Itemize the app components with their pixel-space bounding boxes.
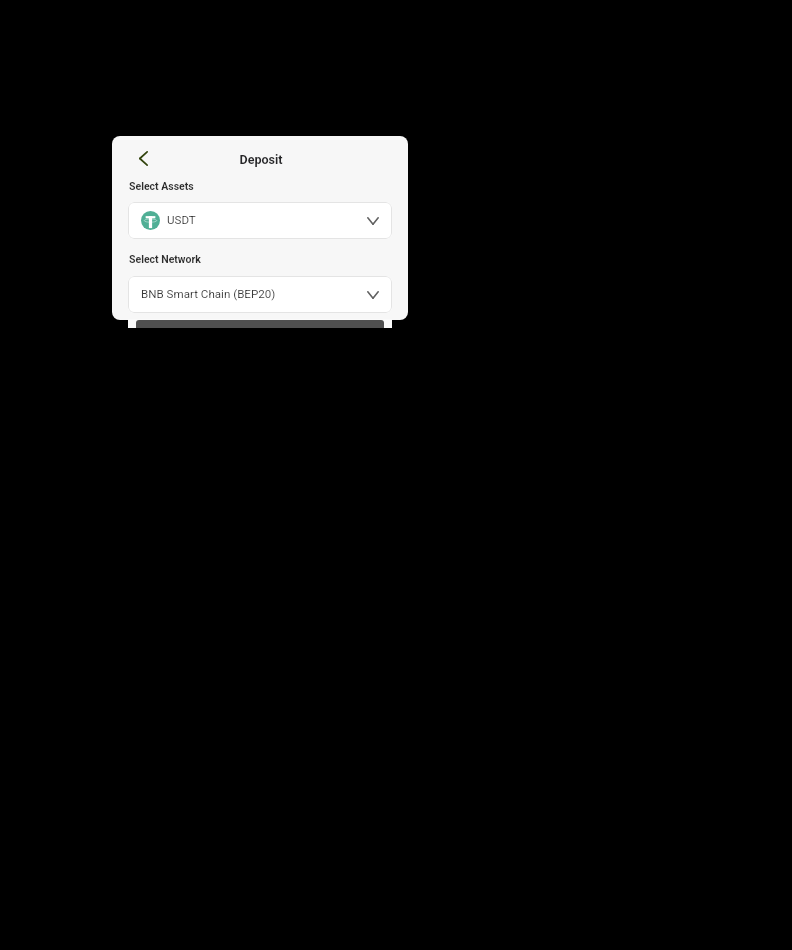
- button[interactable]: Back: [132, 147, 154, 169]
- button[interactable]: USDT: [128, 202, 392, 239]
- staticText: Deposit: [113, 152, 408, 167]
- button[interactable]: Continue: [136, 320, 384, 328]
- staticText: BNB Smart Chain (BEP20): [141, 287, 276, 301]
- staticText: Select Assets: [129, 180, 194, 192]
- staticText: USDT: [167, 213, 196, 227]
- staticText: Select Network: [129, 253, 201, 265]
- button[interactable]: BNB Smart Chain (BEP20): [128, 276, 392, 313]
